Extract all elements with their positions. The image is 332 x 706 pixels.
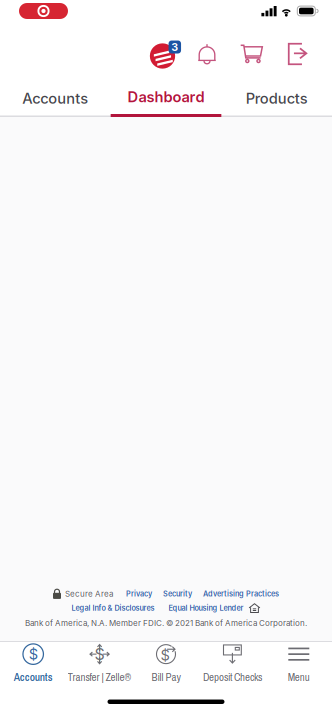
staticText: Bank of America, N.A. Member FDIC. © 202… bbox=[25, 618, 307, 628]
staticText: $ bbox=[95, 644, 105, 664]
staticText: $ bbox=[160, 646, 169, 664]
button[interactable]: $ bbox=[0, 642, 66, 686]
button[interactable]: Deposit Checks bbox=[199, 642, 266, 686]
staticText: Bill Pay bbox=[151, 670, 180, 684]
button[interactable]: $ bbox=[66, 642, 133, 686]
staticText: Privacy bbox=[126, 589, 152, 598]
staticText: Secure Area bbox=[65, 589, 113, 599]
button[interactable]: Privacy bbox=[126, 589, 152, 598]
staticText: Security bbox=[163, 589, 192, 598]
staticText: Menu bbox=[288, 670, 310, 684]
staticText: Accounts bbox=[22, 90, 88, 107]
staticText: Deposit Checks bbox=[203, 670, 262, 684]
button[interactable]: Legal Info & Disclosures bbox=[71, 604, 154, 613]
staticText: $ bbox=[29, 645, 38, 663]
button[interactable]: Sign out bbox=[276, 35, 319, 73]
button[interactable]: $ bbox=[133, 642, 199, 686]
button[interactable]: Dashboard bbox=[111, 80, 221, 117]
staticText: Dashboard bbox=[127, 88, 204, 106]
staticText: Transfer | Zelle® bbox=[68, 670, 132, 684]
staticText: Accounts bbox=[14, 670, 53, 684]
staticText: Legal Info & Disclosures bbox=[71, 604, 154, 613]
button[interactable]: Products bbox=[221, 80, 332, 117]
button[interactable]: Alerts bbox=[187, 35, 227, 73]
button[interactable]: Shopping cart bbox=[227, 35, 276, 73]
button[interactable]: Accounts bbox=[0, 80, 111, 117]
button[interactable]: Messages, 3 unread bbox=[146, 35, 187, 73]
button[interactable]: Menu bbox=[266, 642, 332, 686]
staticText: Equal Housing Lender bbox=[168, 604, 243, 613]
button[interactable]: Advertising Practices bbox=[203, 589, 279, 598]
staticText: Advertising Practices bbox=[203, 589, 279, 598]
button[interactable]: Equal Housing Lender bbox=[168, 604, 243, 613]
staticText: 3 bbox=[171, 40, 178, 53]
button[interactable]: Security bbox=[163, 589, 192, 598]
staticText: Products bbox=[246, 90, 308, 107]
